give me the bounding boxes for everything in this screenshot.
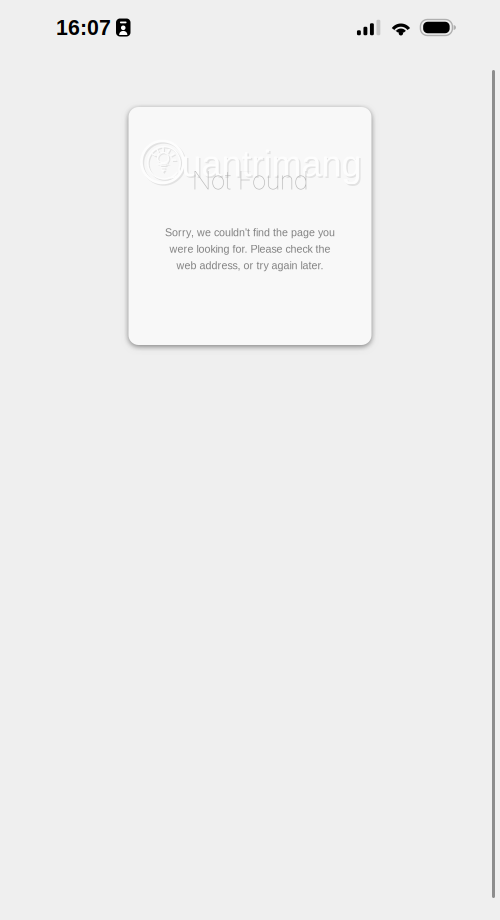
staticText: 16:07: [56, 16, 111, 39]
staticText: Sorry, we couldn't find the page you: [165, 227, 335, 239]
staticText: were looking for. Please check the: [169, 243, 330, 255]
staticText: uantrimang: [181, 144, 361, 184]
staticText: Not Found: [192, 165, 308, 196]
staticText: uantrimang: [183, 145, 363, 185]
staticText: web address, or try again later.: [176, 260, 323, 272]
